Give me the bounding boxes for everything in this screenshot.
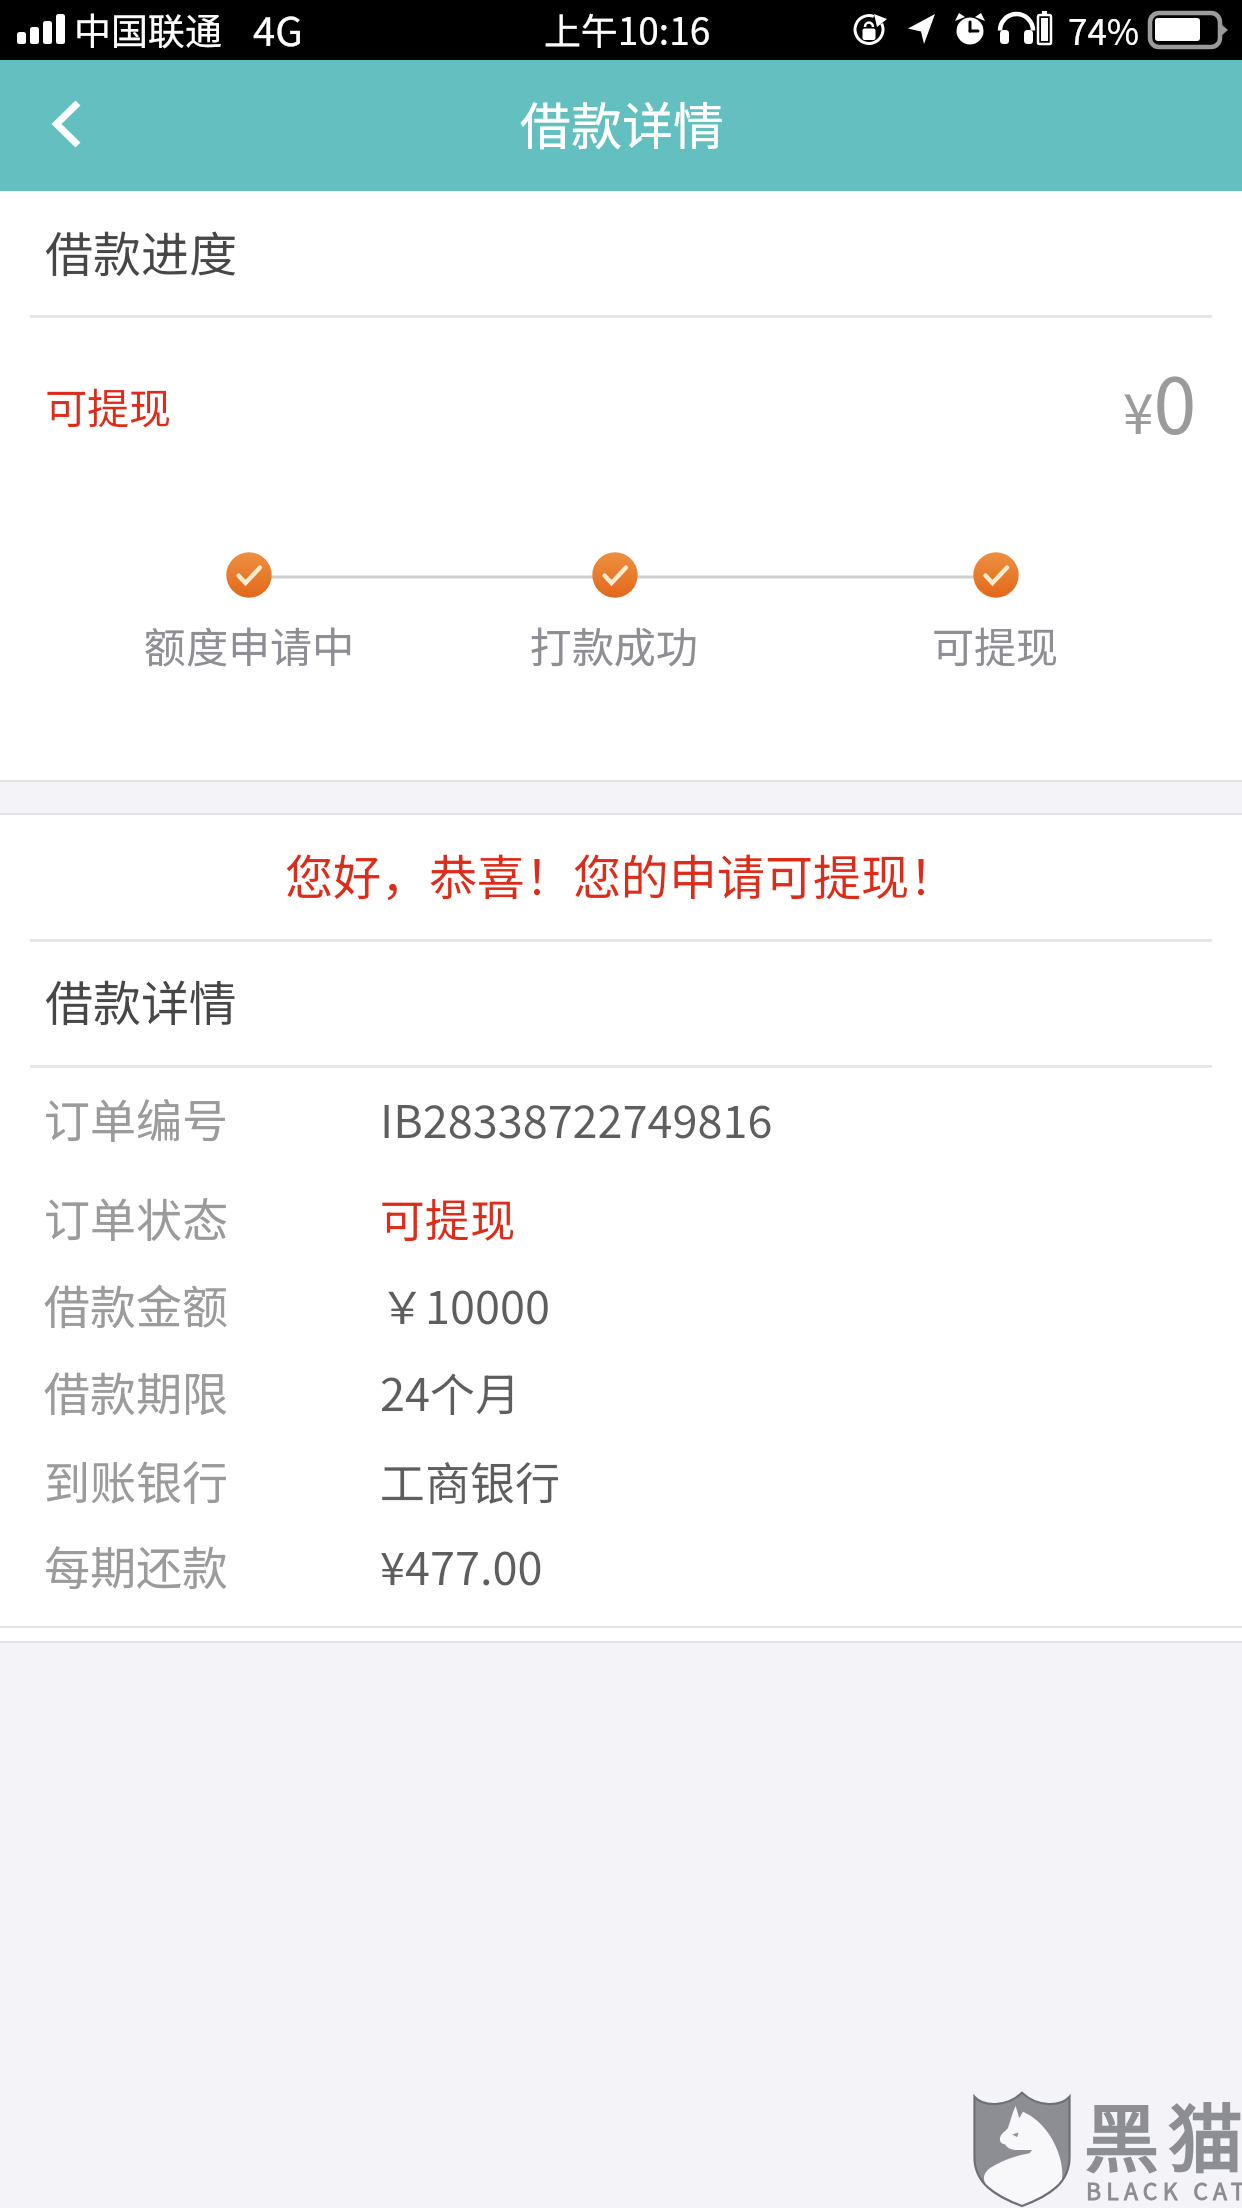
staticText: 借款期限	[44, 1358, 1144, 1425]
staticText: 4G	[253, 0, 1242, 58]
staticText: 74%	[1068, 4, 1242, 55]
staticText: 24个月	[380, 1359, 1242, 1424]
staticText: 中国联通	[74, 2, 1174, 56]
staticText: 订单编号	[44, 1085, 1144, 1152]
staticText: 工商银行	[380, 1448, 1242, 1513]
staticText: 打款成功	[64, 614, 1164, 675]
staticText: IB28338722749816	[380, 1086, 1242, 1151]
staticText: 可提现	[380, 1185, 1242, 1250]
staticText: 到账银行	[44, 1447, 1144, 1514]
staticText: 您好，恭喜！您的申请可提现！	[71, 839, 1171, 909]
staticText: BLACK CAT	[1086, 2173, 1242, 2206]
staticText: ¥477.00	[380, 1533, 1242, 1598]
staticText: ￥10000	[380, 1272, 1242, 1337]
staticText: 黑猫	[1084, 2079, 1242, 2188]
staticText: 借款进度	[45, 216, 1145, 286]
staticText: 借款详情	[72, 86, 1172, 160]
staticText: 订单状态	[44, 1184, 1144, 1251]
staticText: 额度申请中	[0, 614, 799, 675]
staticText: 上午10:16	[77, 2, 1177, 56]
staticText: 借款详情	[45, 965, 1145, 1035]
staticText: 可提现	[45, 375, 1145, 436]
button[interactable]: Back	[14, 76, 114, 176]
staticText: ¥0	[1123, 345, 1197, 456]
staticText: 可提现	[445, 614, 1242, 675]
staticText: 每期还款	[44, 1532, 1144, 1599]
staticText: 借款金额	[44, 1271, 1144, 1338]
